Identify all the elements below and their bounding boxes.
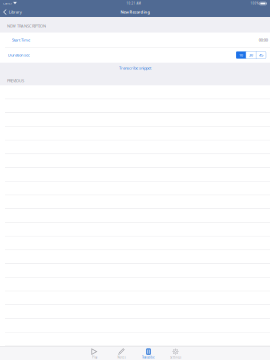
button[interactable]: Notes (108, 346, 135, 360)
button[interactable]: Transcribe (135, 346, 162, 360)
button[interactable]: 45 (256, 51, 266, 58)
button[interactable] (0, 195, 270, 209)
button[interactable] (0, 209, 270, 223)
staticText: PREVIOUS (7, 78, 24, 83)
staticText: Transcribe (142, 356, 155, 359)
staticText: Library (9, 9, 22, 15)
staticText: 10:21 AM (127, 2, 141, 5)
staticText: NEW TRANSCRIPTION (7, 23, 46, 28)
button[interactable]: Play (81, 346, 108, 360)
staticText: Carrier (3, 2, 12, 5)
staticText: Notes (117, 356, 125, 359)
button[interactable]: Transcribe snippet (0, 62, 270, 74)
staticText: Transcribe snippet (119, 65, 151, 71)
button[interactable]: Start Time (0, 33, 270, 47)
button[interactable]: Settings (162, 346, 189, 360)
staticText: New Recording (120, 9, 150, 15)
button[interactable]: 10 (236, 51, 246, 58)
button[interactable] (0, 99, 270, 113)
staticText: 30 (249, 52, 253, 58)
button[interactable]: Duration sec (0, 48, 270, 62)
staticText: 100% (250, 2, 258, 5)
staticText: 10 (239, 52, 243, 58)
button[interactable] (0, 140, 270, 154)
button[interactable] (0, 154, 270, 168)
button[interactable] (0, 305, 270, 319)
staticText: Settings (170, 356, 181, 359)
staticText: Duration sec (8, 52, 30, 58)
button[interactable]: Library (0, 7, 25, 17)
button[interactable]: 30 (246, 51, 256, 58)
staticText: 00:00 (259, 37, 268, 43)
button[interactable] (0, 291, 270, 305)
button[interactable] (0, 250, 270, 264)
staticText: Start Time (12, 37, 30, 43)
staticText: Play (92, 356, 97, 359)
staticText: 45 (259, 52, 263, 58)
